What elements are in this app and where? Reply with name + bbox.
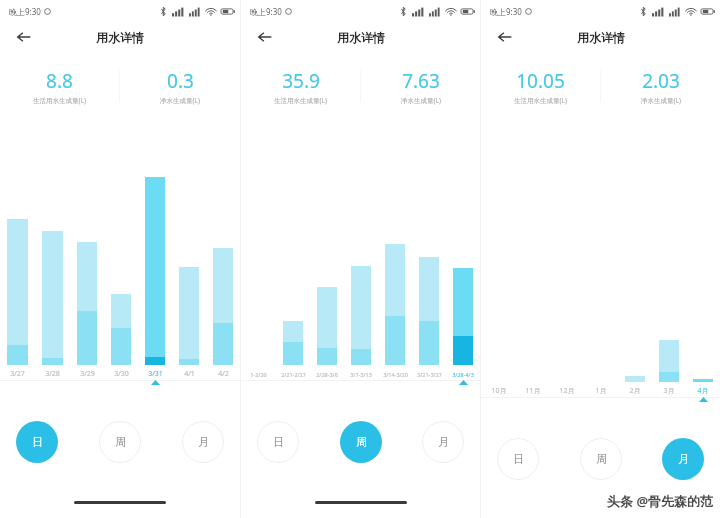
button[interactable]: 周 [340, 421, 382, 463]
button[interactable]: Back [491, 23, 519, 51]
button[interactable] [618, 194, 652, 382]
staticText: 用水详情 [577, 30, 625, 45]
staticText: 3/14-3/20 [383, 371, 408, 378]
staticText: 月 [678, 452, 689, 466]
staticText: 4月 [697, 386, 709, 396]
staticText: 周 [356, 435, 367, 449]
button[interactable]: 日 [257, 421, 299, 463]
button[interactable] [172, 177, 206, 365]
button[interactable] [344, 177, 378, 365]
staticText: 3/7-3/13 [350, 371, 372, 378]
staticText: 12月 [559, 386, 575, 396]
button[interactable] [104, 177, 138, 365]
staticText: 4/2 [218, 369, 229, 379]
button[interactable]: 月 [422, 421, 464, 463]
staticText: 头条 @骨先森的范 [607, 492, 714, 510]
staticText: 生活用水生成量(L) [33, 96, 86, 105]
staticText: 10.05 [516, 68, 565, 94]
staticText: 1-2/20 [250, 371, 267, 378]
staticText: 3/27 [10, 369, 25, 379]
staticText: 11月 [525, 386, 541, 396]
staticText: 0.3 [167, 68, 194, 94]
staticText: 1月 [595, 386, 607, 396]
button[interactable] [0, 177, 35, 365]
staticText: 7.63 [402, 68, 440, 94]
button[interactable] [35, 177, 70, 365]
staticText: 晚上9:30 [250, 6, 282, 17]
button[interactable]: Back [10, 23, 38, 51]
button[interactable]: Back [251, 23, 279, 51]
staticText: 10月 [491, 386, 507, 396]
staticText: 日 [513, 452, 524, 466]
button[interactable] [446, 177, 480, 365]
staticText: 生活用水生成量(L) [274, 96, 327, 105]
staticText: 3/30 [114, 369, 129, 379]
button[interactable] [652, 194, 686, 382]
button[interactable] [412, 177, 446, 365]
staticText: 生活用水生成量(L) [514, 96, 567, 105]
staticText: 用水详情 [337, 30, 385, 45]
staticText: 3/28 [45, 369, 60, 379]
staticText: 月 [198, 435, 209, 449]
staticText: 日 [32, 435, 43, 449]
staticText: 4/1 [184, 369, 195, 379]
button[interactable] [378, 177, 412, 365]
button[interactable]: 月 [662, 438, 704, 480]
staticText: 晚上9:30 [490, 6, 522, 17]
staticText: 35.9 [282, 68, 320, 94]
staticText: 周 [115, 435, 126, 449]
staticText: 2.03 [642, 68, 680, 94]
button[interactable]: 日 [16, 421, 58, 463]
button[interactable] [70, 177, 104, 365]
staticText: 月 [438, 435, 449, 449]
staticText: 净水生成量(L) [641, 96, 681, 105]
button[interactable] [138, 177, 172, 365]
staticText: 3/28-4/3 [452, 371, 474, 378]
button[interactable] [276, 177, 310, 365]
button[interactable]: 周 [99, 421, 141, 463]
staticText: 2月 [629, 386, 641, 396]
staticText: 3月 [663, 386, 675, 396]
button[interactable]: 月 [182, 421, 224, 463]
staticText: 日 [273, 435, 284, 449]
button[interactable]: 日 [497, 438, 539, 480]
button[interactable] [206, 177, 240, 365]
button[interactable] [686, 194, 720, 382]
staticText: 2/28-3/6 [316, 371, 338, 378]
button[interactable] [310, 177, 344, 365]
staticText: 3/21-3/27 [417, 371, 442, 378]
staticText: 用水详情 [96, 30, 144, 45]
staticText: 2/21-2/27 [281, 371, 306, 378]
staticText: 净水生成量(L) [401, 96, 441, 105]
staticText: 3/29 [80, 369, 95, 379]
staticText: 3/31 [148, 369, 163, 379]
staticText: 净水生成量(L) [160, 96, 200, 105]
button[interactable]: 周 [580, 438, 622, 480]
staticText: 8.8 [46, 68, 73, 94]
staticText: 周 [596, 452, 607, 466]
staticText: 晚上9:30 [9, 6, 41, 17]
